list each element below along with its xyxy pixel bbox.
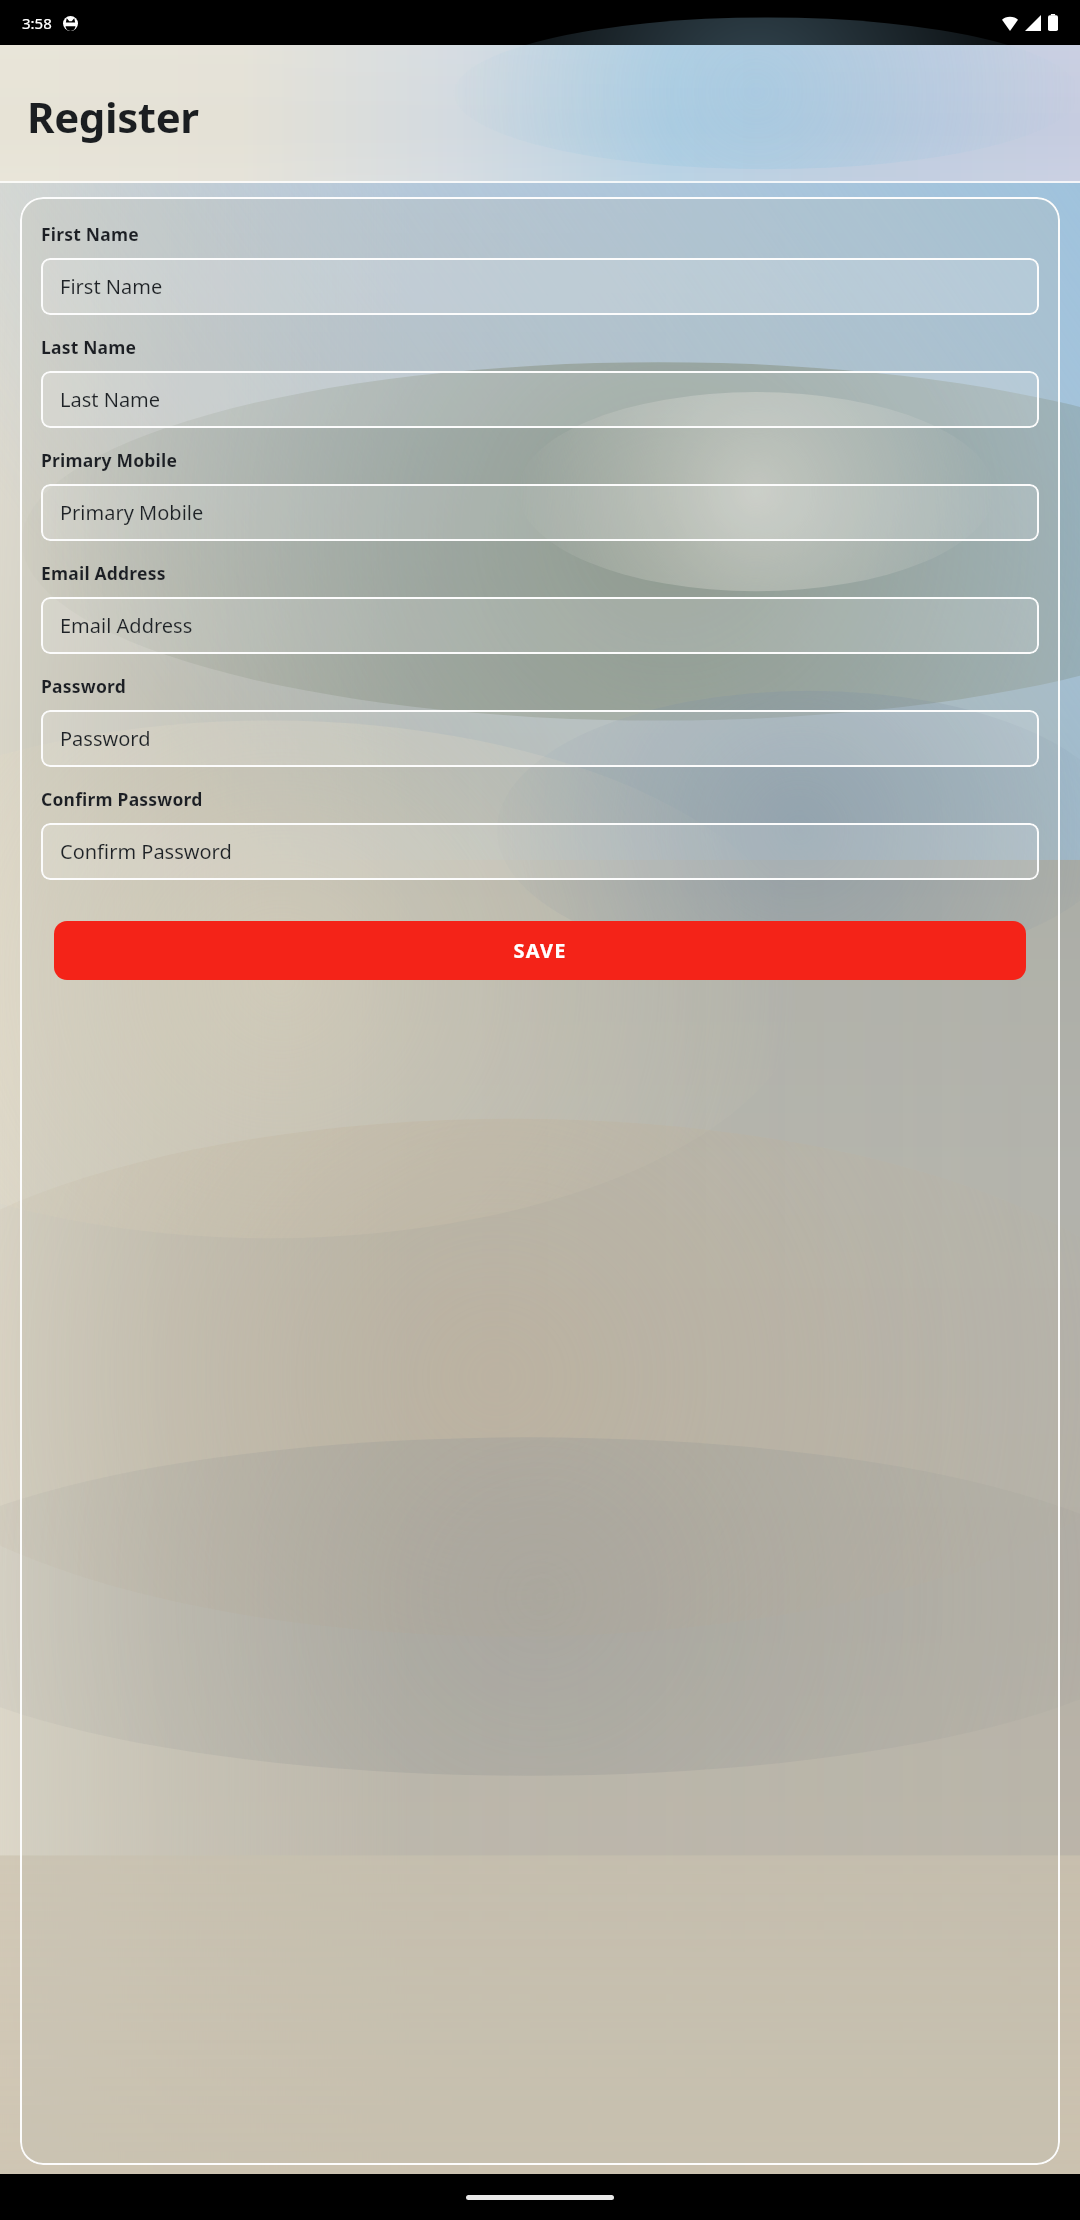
staticText: Email Address — [41, 561, 166, 585]
staticText: Primary Mobile — [41, 448, 178, 472]
staticText: Email Address — [60, 612, 193, 639]
staticText: Confirm Password — [60, 838, 232, 865]
button[interactable]: Confirm Password — [41, 823, 1039, 880]
staticText: 3:58 — [22, 13, 52, 33]
button[interactable]: SAVE — [54, 921, 1026, 980]
staticText: Primary Mobile — [60, 499, 204, 526]
staticText: First Name — [41, 222, 139, 246]
staticText: First Name — [60, 273, 163, 300]
button[interactable]: First Name — [41, 258, 1039, 315]
button[interactable]: Password — [41, 710, 1039, 767]
staticText: Last Name — [60, 386, 161, 413]
staticText: Last Name — [41, 335, 137, 359]
button[interactable]: Email Address — [41, 597, 1039, 654]
button[interactable]: Primary Mobile — [41, 484, 1039, 541]
staticText: SAVE — [513, 937, 567, 964]
staticText: Password — [41, 674, 126, 698]
staticText: Confirm Password — [41, 787, 203, 811]
staticText: Register — [27, 88, 199, 145]
staticText: Password — [60, 725, 151, 752]
button[interactable]: Last Name — [41, 371, 1039, 428]
